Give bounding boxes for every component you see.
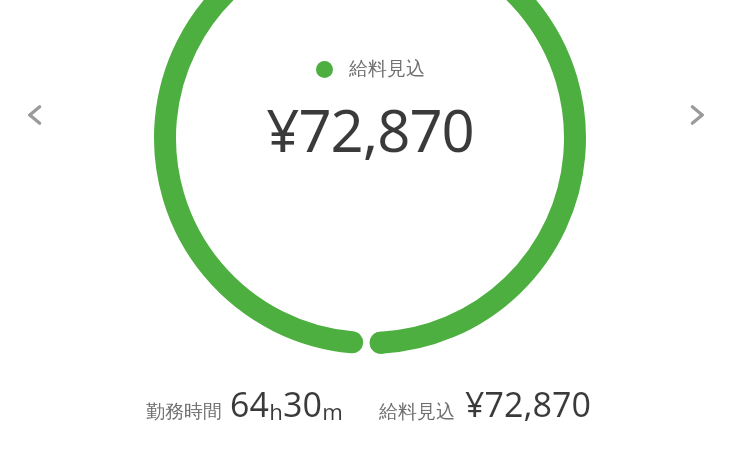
staticText: 勤務時間 [146, 400, 222, 424]
staticText: m [322, 396, 343, 426]
staticText: h [269, 396, 283, 426]
staticText: 64 [230, 381, 269, 427]
button[interactable]: 前へ [10, 90, 60, 140]
staticText: ¥72,870 [266, 90, 474, 169]
staticText: 30 [283, 381, 322, 427]
staticText: 給料見込 [379, 400, 455, 424]
button[interactable]: 次へ [672, 90, 722, 140]
button[interactable]: 勤務時間 [146, 381, 591, 427]
staticText: ¥72,870 [465, 381, 591, 427]
staticText: 給料見込 [349, 57, 425, 81]
